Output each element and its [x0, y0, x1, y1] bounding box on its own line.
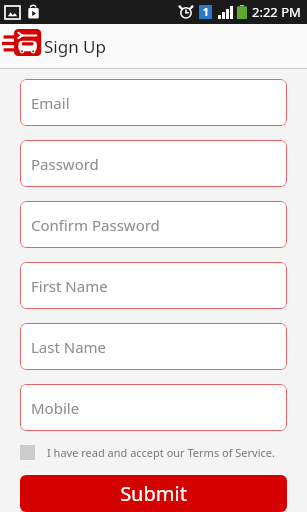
button[interactable]: Accept Terms of Service checkbox — [20, 439, 287, 465]
staticText: Last Name — [31, 337, 107, 357]
button[interactable]: First Name — [20, 262, 287, 309]
button[interactable]: Submit — [20, 475, 287, 512]
staticText: 2:22 PM — [252, 3, 301, 21]
staticText: 1 — [203, 5, 209, 19]
button[interactable]: Mobile — [20, 384, 287, 431]
button[interactable]: Confirm Password — [20, 201, 287, 248]
staticText: Email — [31, 93, 70, 113]
button[interactable]: Password — [20, 140, 287, 187]
staticText: Confirm Password — [31, 215, 160, 235]
staticText: Submit — [120, 480, 187, 507]
staticText: First Name — [31, 276, 108, 296]
staticText: Password — [31, 154, 99, 174]
button[interactable]: Last Name — [20, 323, 287, 370]
button[interactable]: Open navigation menu — [0, 24, 44, 68]
staticText: Mobile — [31, 398, 80, 418]
staticText: Sign Up — [44, 35, 106, 58]
staticText: I have read and accept our Terms of Serv… — [47, 445, 275, 460]
button[interactable]: Email — [20, 79, 287, 126]
